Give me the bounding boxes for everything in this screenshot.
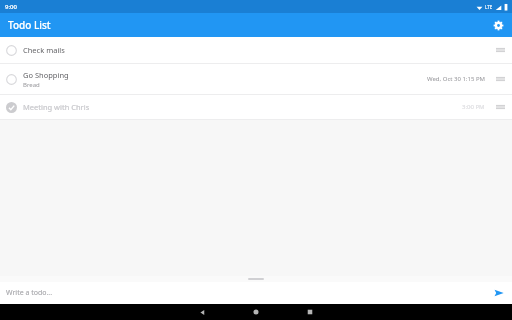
button[interactable]: Send xyxy=(491,285,507,301)
button[interactable]: Home xyxy=(229,304,283,320)
staticText: 3:00 PM xyxy=(462,103,485,111)
staticText: Wed, Oct 30 1:15 PM xyxy=(427,75,485,83)
button[interactable]: Back xyxy=(175,304,229,320)
staticText: LTE xyxy=(485,4,493,10)
staticText: Check mails xyxy=(23,45,65,55)
staticText: Meeting with Chris xyxy=(23,102,90,112)
staticText: 9:00 xyxy=(5,3,17,11)
staticText: Go Shopping xyxy=(23,70,69,80)
button[interactable]: Reorder xyxy=(493,100,507,114)
button[interactable]: Mark done xyxy=(0,64,512,94)
staticText: Todo List xyxy=(8,18,51,32)
staticText: Bread xyxy=(23,81,40,89)
button[interactable]: Mark done xyxy=(0,37,512,63)
staticText: Write a todo... xyxy=(6,288,53,298)
button[interactable]: Mark done xyxy=(6,74,17,85)
button[interactable]: Recent apps xyxy=(283,304,337,320)
button[interactable]: Mark not done xyxy=(0,95,512,119)
button[interactable]: Settings xyxy=(488,15,508,35)
button[interactable]: Reorder xyxy=(493,43,507,57)
button[interactable]: Mark done xyxy=(6,45,17,56)
button[interactable]: Write a todo... xyxy=(0,282,491,304)
button[interactable]: Mark not done xyxy=(6,102,17,113)
button[interactable]: Reorder xyxy=(493,72,507,86)
